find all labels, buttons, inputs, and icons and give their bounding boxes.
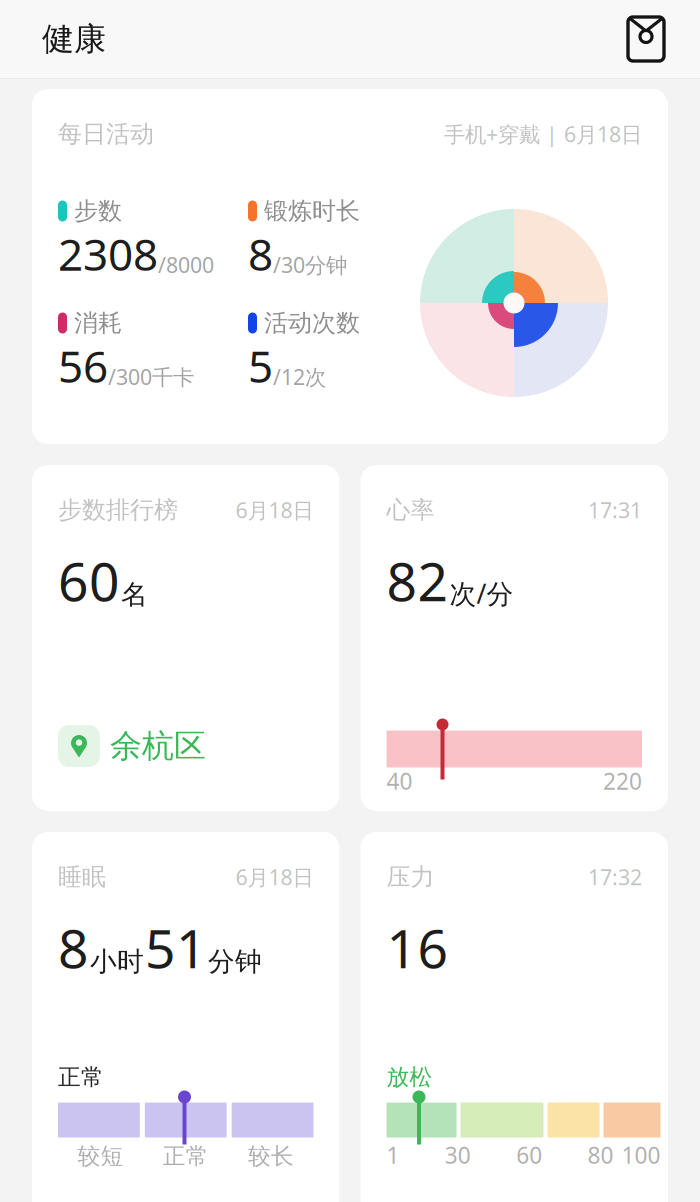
staticText: 2308 — [58, 225, 158, 283]
staticText: 较长 — [248, 1142, 294, 1170]
staticText: 步数 — [74, 196, 122, 226]
staticText: 30 — [445, 1140, 471, 1170]
staticText: 16 — [386, 912, 448, 983]
staticText: 60 — [516, 1140, 542, 1170]
staticText: 压力 — [386, 862, 434, 892]
staticText: /30分钟 — [273, 251, 347, 279]
staticText: 步数排行榜 — [58, 495, 178, 525]
staticText: 分钟 — [208, 945, 262, 978]
staticText: 睡眠 — [58, 862, 106, 892]
staticText: 80 — [587, 1140, 613, 1170]
staticText: 健康 — [42, 19, 106, 59]
staticText: /300千卡 — [108, 363, 194, 391]
staticText: 8 — [248, 225, 273, 283]
button[interactable]: 心率 — [360, 465, 668, 811]
staticText: 心率 — [386, 495, 434, 525]
staticText: 较短 — [78, 1142, 124, 1170]
staticText: 活动次数 — [264, 308, 360, 338]
staticText: 40 — [386, 766, 412, 796]
staticText: 220 — [603, 766, 642, 796]
button[interactable]: 压力 — [360, 832, 668, 1202]
button[interactable]: 睡眠 — [32, 832, 339, 1202]
staticText: 余杭区 — [110, 726, 206, 766]
staticText: 6月18日 — [235, 496, 313, 524]
staticText: 锻炼时长 — [264, 196, 360, 226]
staticText: 1 — [386, 1140, 399, 1170]
staticText: 消耗 — [74, 308, 122, 338]
staticText: 小时 — [90, 945, 144, 978]
staticText: 100 — [621, 1140, 660, 1170]
button[interactable]: 步数排行榜 — [32, 465, 339, 811]
staticText: 名 — [121, 578, 148, 611]
staticText: 17:32 — [588, 863, 642, 891]
staticText: 6月18日 — [235, 863, 313, 891]
staticText: 5 — [248, 337, 273, 395]
staticText: /12次 — [273, 363, 326, 391]
staticText: 正常 — [58, 1063, 104, 1091]
staticText: 手机+穿戴 | 6月18日 — [444, 120, 642, 148]
staticText: 正常 — [163, 1142, 209, 1170]
staticText: 51 — [145, 912, 207, 983]
staticText: 次/分 — [449, 576, 513, 611]
button[interactable]: 每日活动 — [32, 89, 668, 444]
staticText: 56 — [58, 337, 108, 395]
staticText: 放松 — [386, 1063, 432, 1091]
button[interactable]: 红包 — [622, 12, 670, 66]
staticText: 60 — [58, 545, 120, 616]
staticText: 82 — [386, 545, 448, 616]
staticText: 8 — [58, 912, 89, 983]
staticText: 每日活动 — [58, 119, 154, 149]
staticText: /8000 — [158, 251, 214, 279]
staticText: 17:31 — [588, 496, 642, 524]
